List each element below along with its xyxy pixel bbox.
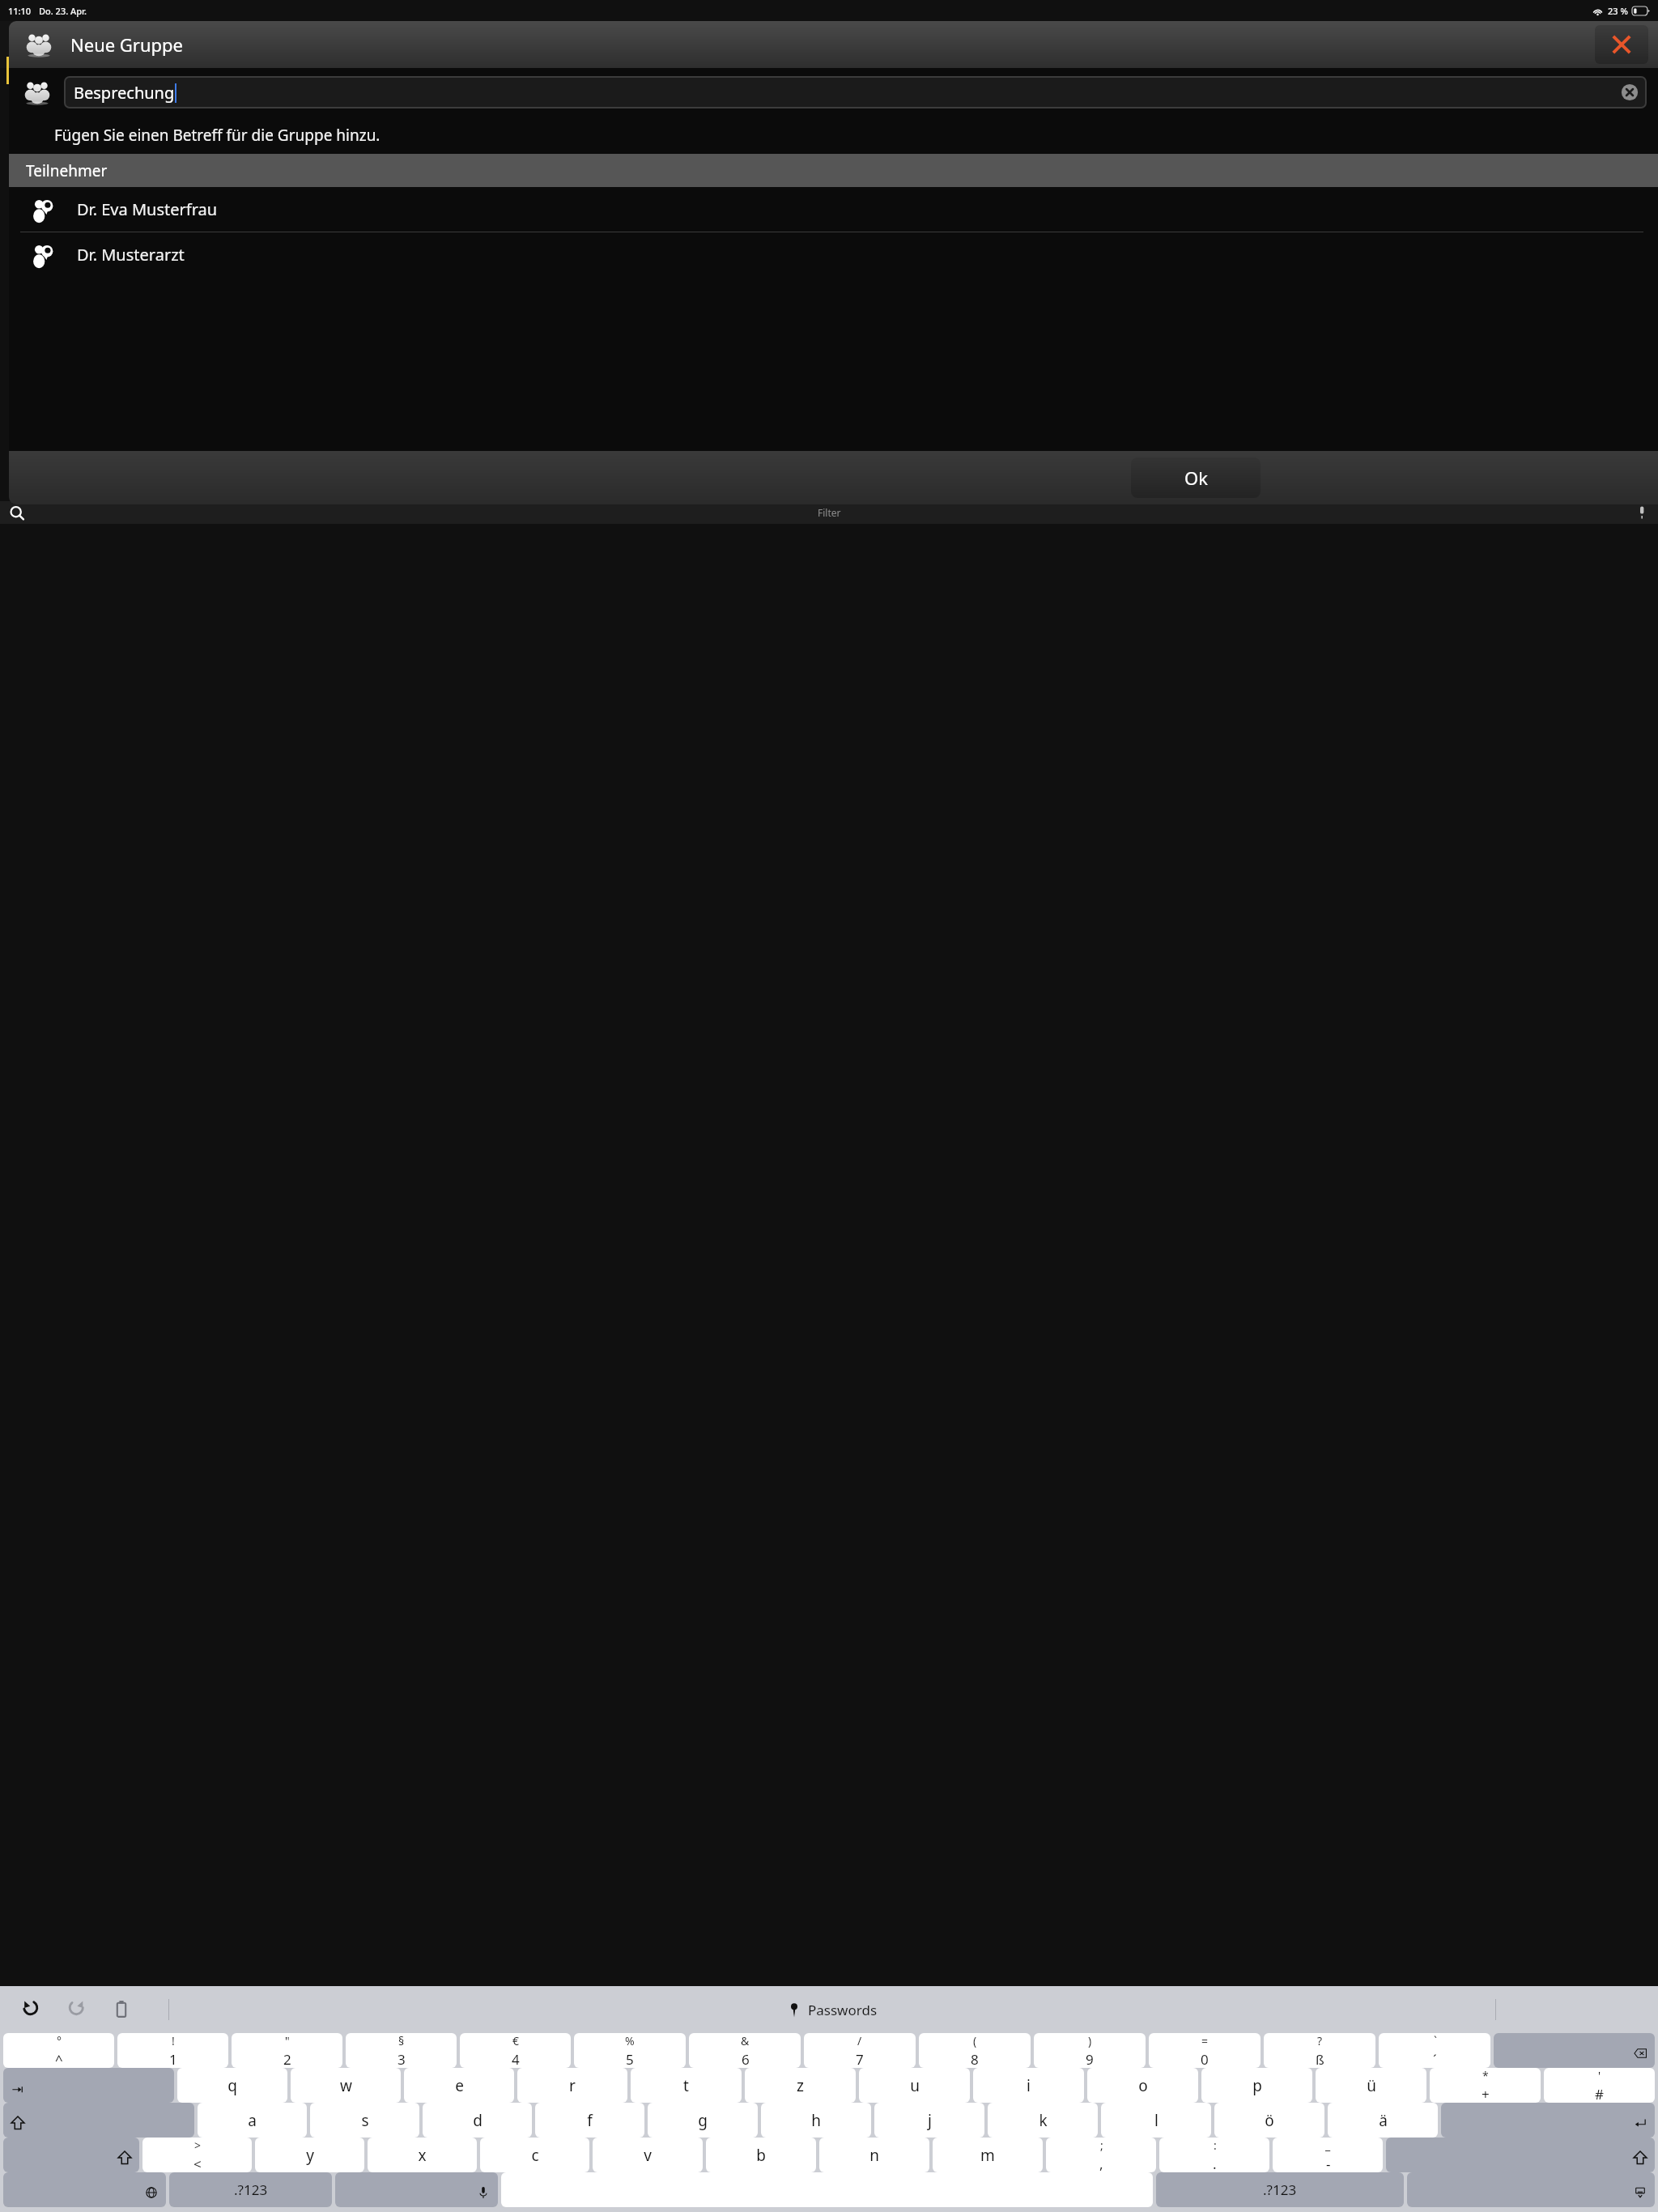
button[interactable]: % bbox=[574, 2033, 686, 2068]
staticText: + bbox=[1482, 2085, 1490, 2103]
button[interactable]: : bbox=[1159, 2138, 1269, 2172]
button[interactable]: Eingabe löschen bbox=[1621, 83, 1639, 101]
button[interactable]: h bbox=[761, 2103, 871, 2138]
staticText: s bbox=[361, 2110, 369, 2131]
staticText: 4 bbox=[512, 2050, 520, 2068]
staticText: k bbox=[1039, 2110, 1048, 2131]
staticText: Ok bbox=[1184, 466, 1208, 490]
staticText: : bbox=[1214, 2138, 1217, 2153]
button[interactable]: Eingabe bbox=[1441, 2103, 1655, 2138]
button[interactable]: € bbox=[460, 2033, 571, 2068]
staticText: - bbox=[1326, 2155, 1331, 2172]
button[interactable]: ; bbox=[1046, 2138, 1156, 2172]
button[interactable]: r bbox=[517, 2068, 627, 2103]
button[interactable]: Einfügen bbox=[108, 1997, 134, 2023]
button[interactable]: d bbox=[423, 2103, 532, 2138]
button[interactable]: y bbox=[255, 2138, 364, 2172]
button[interactable]: > bbox=[142, 2138, 252, 2172]
button[interactable]: i bbox=[973, 2068, 1084, 2103]
staticText: , bbox=[1099, 2155, 1103, 2172]
button[interactable]: ` bbox=[1379, 2033, 1490, 2068]
button[interactable]: Tastatur ausblenden bbox=[1407, 2172, 1655, 2207]
staticText: j bbox=[928, 2110, 932, 2131]
button[interactable]: ö bbox=[1214, 2103, 1324, 2138]
button[interactable]: b bbox=[706, 2138, 816, 2172]
staticText: c bbox=[531, 2145, 539, 2166]
button[interactable]: Tabulator bbox=[3, 2068, 174, 2103]
button[interactable]: Wiederholen bbox=[63, 1997, 89, 2023]
button[interactable]: Sprache wechseln bbox=[3, 2172, 166, 2207]
staticText: € bbox=[512, 2033, 520, 2048]
button[interactable]: " bbox=[232, 2033, 342, 2068]
button[interactable]: n bbox=[819, 2138, 929, 2172]
button[interactable]: Ok bbox=[1131, 457, 1261, 498]
staticText: ^ bbox=[55, 2050, 63, 2068]
staticText: Do. 23. Apr. bbox=[39, 5, 87, 17]
button[interactable]: / bbox=[804, 2033, 916, 2068]
button[interactable]: x bbox=[368, 2138, 477, 2172]
button[interactable]: Umschalt rechts bbox=[1386, 2138, 1655, 2172]
staticText: ( bbox=[973, 2033, 977, 2048]
button[interactable]: t bbox=[631, 2068, 742, 2103]
staticText: ? bbox=[1317, 2033, 1323, 2048]
button[interactable]: v bbox=[593, 2138, 703, 2172]
button[interactable]: u bbox=[859, 2068, 970, 2103]
button[interactable]: Rücktaste bbox=[1494, 2033, 1655, 2068]
button[interactable]: § bbox=[346, 2033, 457, 2068]
button[interactable]: ü bbox=[1316, 2068, 1426, 2103]
button[interactable]: p bbox=[1201, 2068, 1312, 2103]
button[interactable]: o bbox=[1087, 2068, 1198, 2103]
button[interactable]: & bbox=[689, 2033, 801, 2068]
staticText: p bbox=[1252, 2075, 1262, 2096]
button[interactable]: ° bbox=[3, 2033, 114, 2068]
button[interactable]: Besprechung bbox=[66, 78, 1645, 107]
button[interactable]: c bbox=[480, 2138, 589, 2172]
staticText: x bbox=[418, 2145, 427, 2166]
button[interactable]: Schließen bbox=[1595, 25, 1648, 64]
staticText: m bbox=[980, 2145, 995, 2166]
button[interactable]: k bbox=[988, 2103, 1098, 2138]
button[interactable]: ) bbox=[1034, 2033, 1146, 2068]
button[interactable]: Umschalt bbox=[3, 2103, 194, 2138]
staticText: 2 bbox=[283, 2050, 291, 2068]
staticText: ä bbox=[1379, 2110, 1388, 2131]
button[interactable]: ? bbox=[1264, 2033, 1375, 2068]
staticText: n bbox=[869, 2145, 879, 2166]
staticText: . bbox=[1213, 2155, 1217, 2172]
staticText: y bbox=[306, 2145, 314, 2166]
button[interactable]: = bbox=[1149, 2033, 1261, 2068]
button[interactable]: e bbox=[404, 2068, 514, 2103]
staticText: 0 bbox=[1201, 2050, 1209, 2068]
button[interactable]: s bbox=[310, 2103, 419, 2138]
button[interactable]: .?123 bbox=[169, 2172, 332, 2207]
button[interactable]: j bbox=[874, 2103, 984, 2138]
staticText: # bbox=[1595, 2085, 1604, 2103]
button[interactable]: l bbox=[1101, 2103, 1211, 2138]
button[interactable]: .?123 bbox=[1156, 2172, 1404, 2207]
button[interactable]: Dr. Musterarzt bbox=[9, 232, 1658, 277]
button[interactable]: a bbox=[198, 2103, 307, 2138]
button[interactable]: m bbox=[933, 2138, 1043, 2172]
staticText: v bbox=[644, 2145, 652, 2166]
button[interactable]: Rückgängig bbox=[18, 1997, 44, 2023]
button[interactable]: Dr. Eva Musterfrau bbox=[9, 187, 1658, 232]
button[interactable]: ä bbox=[1328, 2103, 1438, 2138]
staticText: ß bbox=[1316, 2050, 1324, 2068]
button[interactable]: ' bbox=[1544, 2068, 1655, 2103]
button[interactable]: z bbox=[745, 2068, 856, 2103]
button[interactable]: w bbox=[291, 2068, 401, 2103]
staticText: / bbox=[857, 2033, 862, 2048]
button[interactable]: Passwords bbox=[786, 2001, 878, 2019]
button[interactable]: ( bbox=[919, 2033, 1031, 2068]
button[interactable]: ! bbox=[117, 2033, 228, 2068]
button[interactable]: g bbox=[648, 2103, 758, 2138]
staticText: 5 bbox=[626, 2050, 634, 2068]
button[interactable]: q bbox=[177, 2068, 287, 2103]
button[interactable]: Diktat bbox=[335, 2172, 498, 2207]
staticText: Filter bbox=[818, 506, 841, 519]
button[interactable]: _ bbox=[1273, 2138, 1383, 2172]
button[interactable]: * bbox=[1430, 2068, 1541, 2103]
button[interactable]: Umschalt links bbox=[3, 2138, 139, 2172]
button[interactable]: f bbox=[535, 2103, 644, 2138]
